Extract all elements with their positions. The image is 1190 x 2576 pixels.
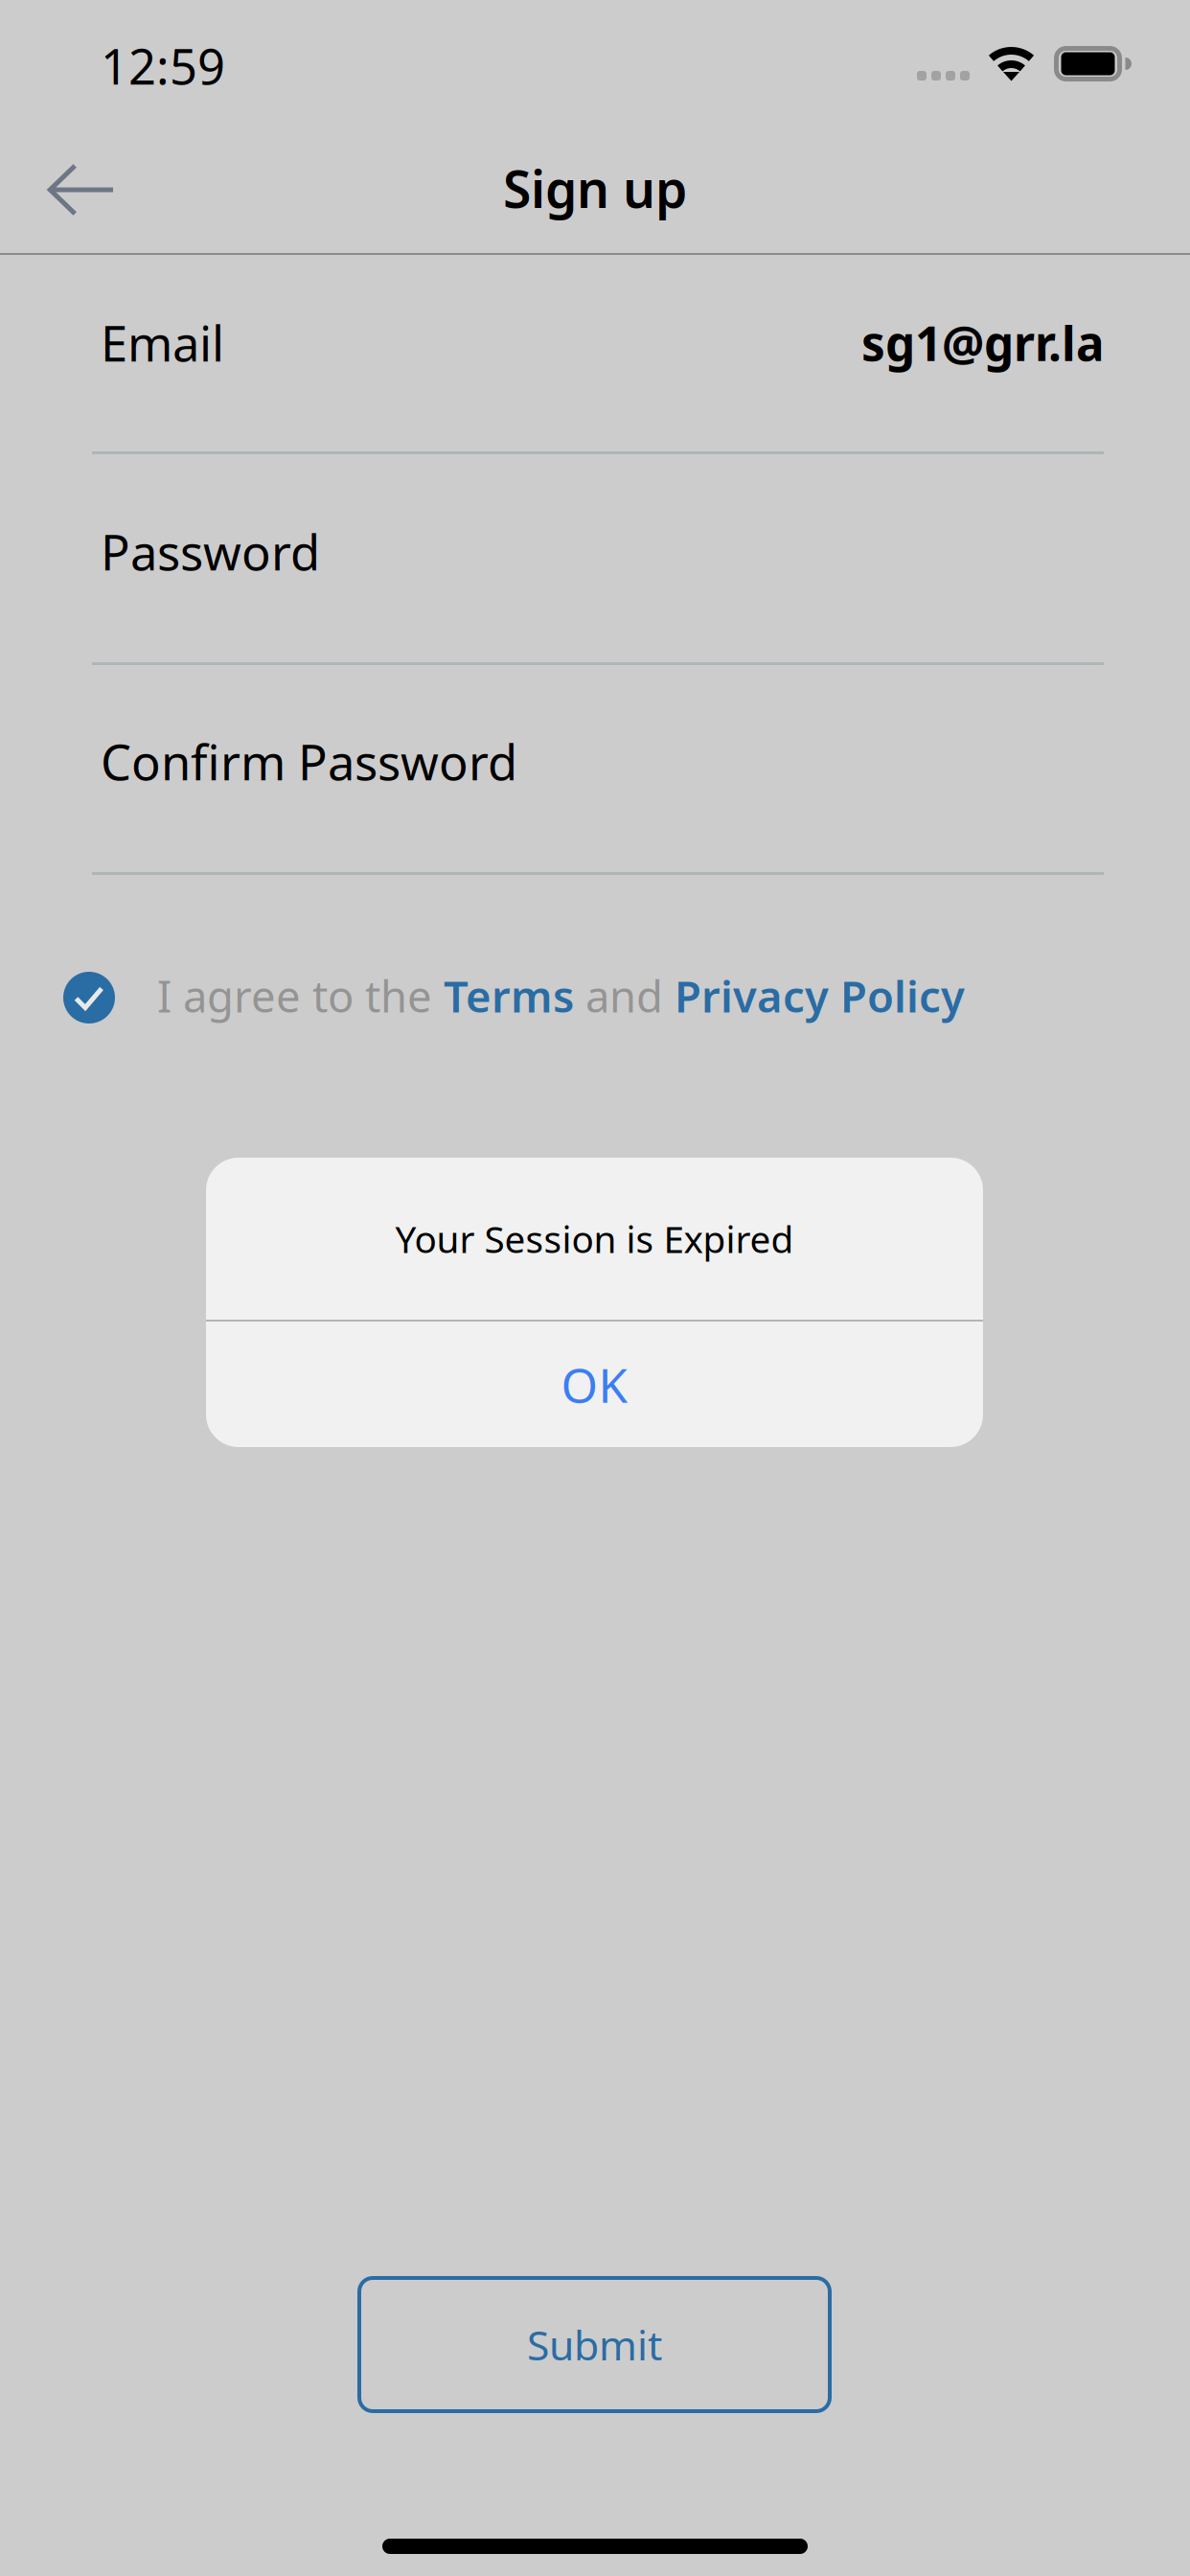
- staticText: and: [574, 967, 675, 1025]
- button[interactable]: OK: [206, 1322, 983, 1447]
- staticText: Email: [101, 310, 224, 375]
- button[interactable]: Back: [14, 132, 149, 247]
- staticText: sg1@grr.la: [861, 311, 1105, 374]
- staticText: Terms: [444, 967, 574, 1025]
- staticText: Your Session is Expired: [395, 1214, 794, 1263]
- button[interactable]: I agree to the: [63, 967, 1098, 1024]
- staticText: Password: [101, 519, 320, 584]
- staticText: Confirm Password: [101, 729, 517, 794]
- staticText: Privacy Policy: [675, 967, 965, 1025]
- staticText: 12:59: [101, 34, 225, 98]
- staticText: OK: [561, 1353, 628, 1416]
- staticText: Sign up: [503, 154, 687, 222]
- staticText: I agree to the: [157, 967, 444, 1025]
- button[interactable]: Submit: [357, 2276, 832, 2413]
- staticText: Submit: [527, 2317, 662, 2372]
